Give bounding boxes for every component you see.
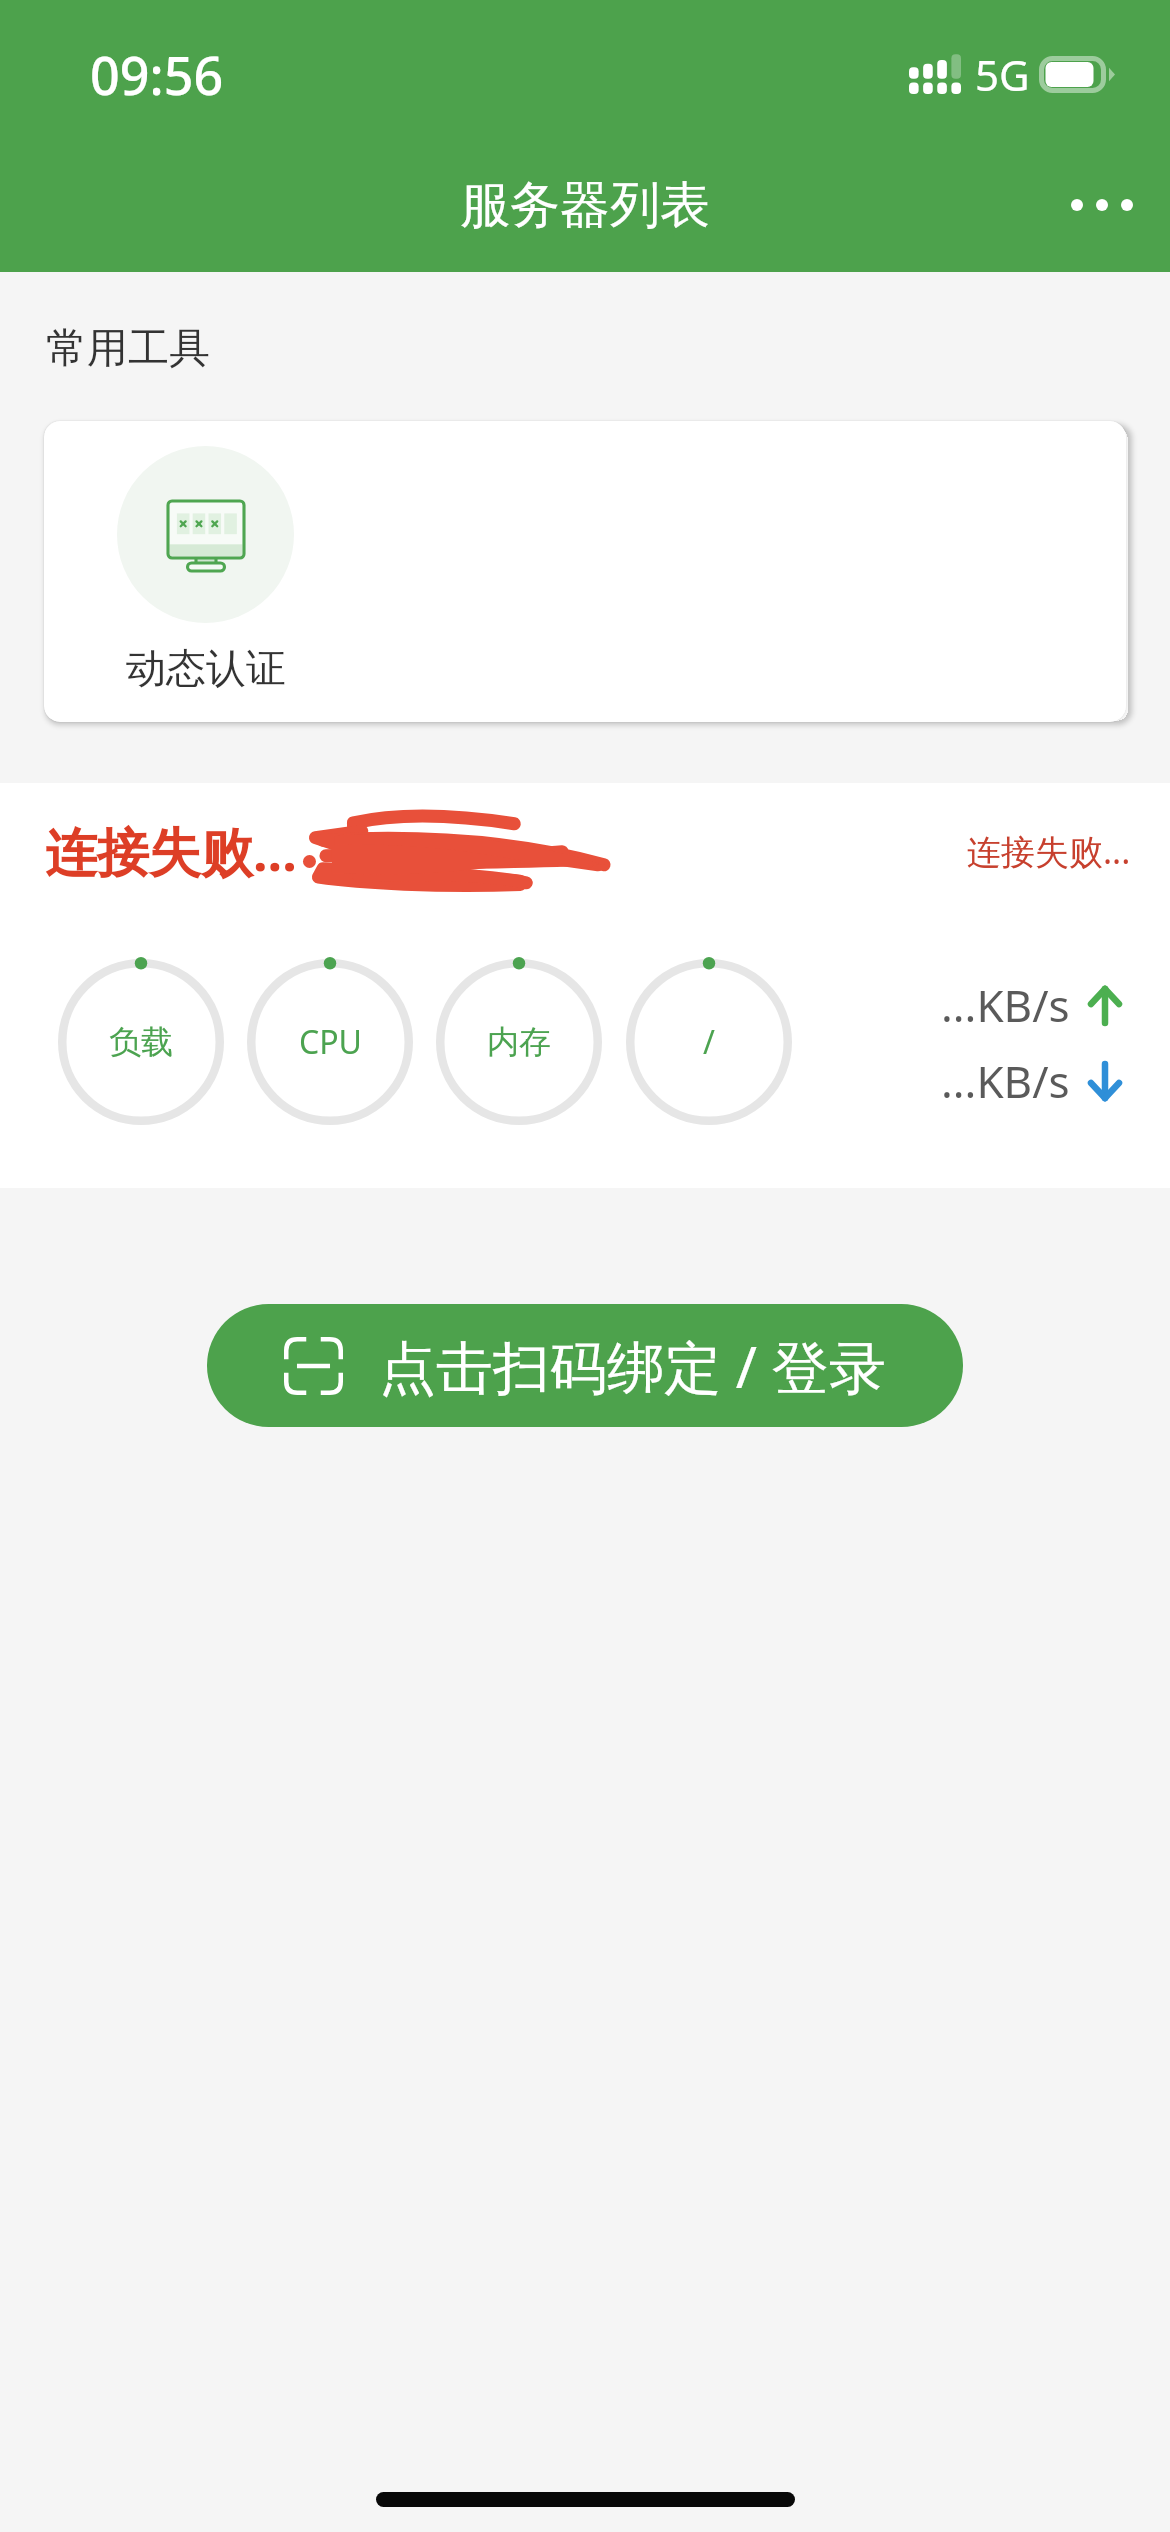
staticText: 5G <box>975 46 1030 103</box>
staticText: 常用工具 <box>46 323 210 375</box>
staticText: / <box>703 1020 715 1064</box>
button[interactable]: 点击扫码绑定 / 登录 <box>207 1304 963 1427</box>
button[interactable]: 动态认证 <box>44 421 314 722</box>
staticText: CPU <box>299 1020 362 1064</box>
staticText: ...KB/s <box>941 975 1070 1035</box>
button[interactable]: 连接失败... <box>0 783 1170 1188</box>
staticText: 服务器列表 <box>460 174 710 237</box>
staticText: 点击扫码绑定 / 登录 <box>379 1327 886 1405</box>
staticText: 负载 <box>109 1022 173 1062</box>
staticText: 连接失败... <box>45 815 297 886</box>
staticText: ...KB/s <box>941 1051 1070 1111</box>
staticText: 动态认证 <box>126 643 286 693</box>
staticText: 连接失败... <box>967 828 1131 874</box>
staticText: 09:56 <box>90 39 224 110</box>
button[interactable]: More options <box>1050 168 1154 242</box>
staticText: 内存 <box>487 1022 551 1062</box>
